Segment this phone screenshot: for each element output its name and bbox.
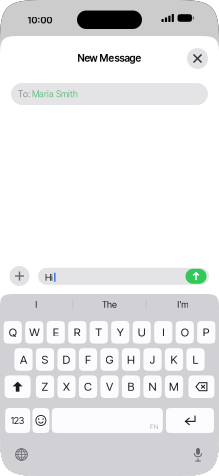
button[interactable]: Dictate	[188, 444, 208, 464]
button[interactable]: Close	[187, 48, 208, 69]
staticText: To:	[18, 89, 32, 99]
staticText: Y	[117, 325, 124, 339]
button[interactable]: W	[25, 321, 43, 344]
button[interactable]: I	[154, 321, 172, 344]
staticText: A	[20, 353, 27, 366]
staticText: E	[53, 325, 59, 339]
button[interactable]: I	[0, 294, 72, 315]
staticText: Z	[41, 380, 48, 394]
button[interactable]	[166, 408, 214, 433]
button[interactable]	[5, 375, 31, 398]
staticText: The	[102, 299, 117, 310]
staticText: J	[149, 353, 155, 366]
staticText: I'm	[177, 299, 188, 310]
button[interactable]: J	[143, 348, 162, 371]
button[interactable]: K	[165, 348, 183, 371]
staticText: F	[85, 353, 91, 366]
button[interactable]: A	[14, 348, 33, 371]
staticText: Hi	[45, 272, 53, 283]
staticText: C	[84, 380, 92, 394]
staticText: L	[192, 353, 198, 366]
button[interactable]: I'm	[146, 294, 219, 315]
staticText: Maria Smith	[32, 89, 78, 99]
button[interactable]	[188, 375, 214, 398]
button[interactable]: L	[186, 348, 205, 371]
staticText: P	[203, 325, 210, 339]
staticText: U	[138, 325, 146, 339]
staticText: New Message	[77, 52, 141, 64]
staticText: I	[35, 299, 37, 310]
button[interactable]: G	[100, 348, 119, 371]
staticText: V	[106, 380, 113, 394]
button[interactable]: X	[57, 375, 76, 398]
button[interactable]: U	[133, 321, 151, 344]
staticText: D	[62, 353, 70, 366]
button[interactable]: Q	[4, 321, 22, 344]
staticText: G	[105, 353, 113, 366]
staticText: W	[29, 325, 39, 339]
button[interactable]: B	[122, 375, 140, 398]
button[interactable]: 123	[5, 408, 30, 433]
staticText: X	[63, 380, 70, 394]
staticText: H	[127, 353, 135, 366]
button[interactable]: R	[68, 321, 86, 344]
button[interactable]: H	[122, 348, 140, 371]
staticText: 123	[11, 415, 25, 426]
button[interactable]: Send	[185, 269, 206, 284]
button[interactable]: C	[79, 375, 97, 398]
button[interactable]: T	[90, 321, 108, 344]
staticText: M	[169, 380, 179, 394]
button[interactable]: EN	[52, 408, 163, 433]
button[interactable]: To:	[11, 83, 208, 105]
button[interactable]: Z	[36, 375, 54, 398]
staticText: R	[74, 325, 81, 339]
button[interactable]: M	[165, 375, 183, 398]
button[interactable]: The	[73, 294, 146, 315]
button[interactable]: Switch keyboard	[11, 444, 31, 464]
button[interactable]: O	[176, 321, 194, 344]
staticText: N	[148, 380, 156, 394]
staticText: Q	[9, 325, 17, 339]
button[interactable]: N	[143, 375, 162, 398]
button[interactable]	[32, 408, 49, 433]
button[interactable]: Y	[111, 321, 129, 344]
button[interactable]: F	[79, 348, 97, 371]
staticText: I	[162, 325, 164, 339]
staticText: O	[181, 325, 189, 339]
staticText: S	[41, 353, 48, 366]
staticText: T	[95, 325, 102, 339]
button[interactable]: D	[57, 348, 76, 371]
staticText: K	[170, 353, 177, 366]
button[interactable]: Add attachment	[9, 266, 29, 286]
staticText: B	[127, 380, 134, 394]
button[interactable]: E	[47, 321, 65, 344]
staticText: EN	[150, 423, 159, 431]
button[interactable]: P	[197, 321, 215, 344]
staticText: 10:00	[27, 14, 52, 26]
button[interactable]: S	[36, 348, 54, 371]
button[interactable]: V	[100, 375, 119, 398]
